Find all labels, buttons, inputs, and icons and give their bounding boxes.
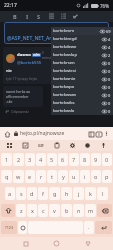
button[interactable]: 6 bbox=[58, 153, 68, 166]
button[interactable]: bortekwdupie bbox=[51, 51, 113, 59]
button[interactable]: 2 bbox=[13, 153, 24, 166]
staticText: m bbox=[88, 207, 94, 214]
button[interactable]: o bbox=[91, 170, 101, 183]
button[interactable]: k bbox=[85, 187, 96, 200]
staticText: bortektregduje bbox=[53, 36, 77, 42]
staticText: s bbox=[20, 190, 23, 197]
button[interactable]: bortekromonzu bbox=[51, 27, 113, 35]
staticText: 0 bbox=[105, 156, 109, 163]
staticText: 0 bbox=[108, 77, 111, 82]
button[interactable]: 4 bbox=[36, 153, 46, 166]
button[interactable]: r bbox=[36, 170, 46, 183]
staticText: t bbox=[51, 173, 53, 180]
button[interactable]: bortekrsenomonzu bbox=[51, 59, 113, 67]
button[interactable]: 7 bbox=[69, 153, 79, 166]
button[interactable]: Settings bbox=[67, 140, 78, 151]
button[interactable]: Home bbox=[3, 130, 11, 138]
staticText: . bbox=[88, 224, 90, 231]
button[interactable]: a bbox=[5, 187, 15, 200]
button[interactable]: More options bbox=[103, 130, 110, 137]
button[interactable]: Clipboard bbox=[51, 140, 62, 151]
button[interactable]: u bbox=[69, 170, 79, 183]
staticText: hejto.pl/najnowsze bbox=[20, 130, 65, 137]
button[interactable]: Quote bbox=[45, 11, 57, 22]
button[interactable]: List bbox=[57, 11, 69, 22]
staticText: bortekwsannie bbox=[53, 92, 77, 98]
staticText: tyle 17 tysięcy hejto bbox=[6, 76, 38, 81]
button[interactable]: Shift bbox=[1, 204, 15, 217]
button[interactable]: Strikethrough bbox=[33, 11, 45, 22]
staticText: nie bbox=[6, 68, 12, 73]
staticText: bortekwiksomoscie bbox=[53, 100, 77, 106]
button[interactable]: t bbox=[47, 170, 57, 183]
button[interactable]: x bbox=[27, 204, 37, 217]
button[interactable]: Home bbox=[51, 238, 62, 249]
button[interactable]: @ASP_NET_NET_Amazing bbox=[4, 22, 109, 44]
button[interactable]: n bbox=[73, 204, 84, 217]
button[interactable]: Recents bbox=[20, 238, 31, 249]
button[interactable]: 9 bbox=[91, 153, 101, 166]
staticText: 0 bbox=[108, 69, 111, 74]
button[interactable]: 5 bbox=[47, 153, 57, 166]
button[interactable]: 0 bbox=[102, 153, 112, 166]
button[interactable]: bortekwniesienku bbox=[51, 75, 113, 83]
button[interactable]: dasmo bbox=[3, 47, 55, 84]
button[interactable]: Stickers bbox=[20, 140, 31, 151]
button[interactable]: 1 bbox=[1, 153, 12, 166]
button[interactable]: Theme bbox=[82, 140, 93, 151]
button[interactable]: i bbox=[80, 170, 90, 183]
button[interactable]: Link bbox=[69, 11, 81, 22]
button[interactable]: Voice input bbox=[98, 140, 109, 151]
button[interactable]: Bold bbox=[9, 11, 21, 22]
button[interactable]: Backspace bbox=[97, 204, 112, 217]
staticText: b bbox=[65, 207, 69, 214]
button[interactable]: w bbox=[13, 170, 24, 183]
button[interactable]: bortekwsannie bbox=[51, 91, 113, 99]
button[interactable]: sweet herbs aa officemember -sile bbox=[3, 86, 43, 107]
button[interactable]: s bbox=[16, 187, 26, 200]
button[interactable]: l bbox=[97, 187, 108, 200]
button[interactable]: Tabs bbox=[95, 130, 103, 138]
button[interactable]: bortekwiksomoscie bbox=[51, 99, 113, 107]
staticText: bortekdeweloperski bbox=[53, 44, 77, 50]
button[interactable]: b bbox=[61, 204, 72, 217]
staticText: e bbox=[28, 173, 32, 180]
button[interactable]: bortekwdomu bbox=[51, 107, 113, 115]
button[interactable]: q bbox=[1, 170, 12, 183]
staticText: bortekwdomu bbox=[53, 108, 77, 114]
button[interactable]: Italic bbox=[21, 11, 33, 22]
button[interactable]: c bbox=[38, 204, 48, 217]
button[interactable]: d bbox=[27, 187, 37, 200]
button[interactable]: ?123 bbox=[1, 221, 17, 234]
button[interactable]: bortektregduje bbox=[51, 35, 113, 43]
button[interactable]: Back bbox=[82, 238, 93, 249]
button[interactable]: f bbox=[38, 187, 48, 200]
button[interactable]: y bbox=[58, 170, 68, 183]
button[interactable]: v bbox=[49, 204, 60, 217]
button[interactable]: GIF bbox=[35, 140, 46, 151]
button[interactable]: m bbox=[85, 204, 96, 217]
button[interactable]: j bbox=[73, 187, 84, 200]
staticText: bortekwniesienku bbox=[53, 76, 77, 82]
button[interactable]: e bbox=[25, 170, 35, 183]
staticText: B bbox=[13, 13, 17, 20]
button[interactable]: . bbox=[84, 221, 94, 234]
button[interactable]: g bbox=[49, 187, 60, 200]
button[interactable]: z bbox=[16, 204, 26, 217]
button[interactable]: Keyboard switcher bbox=[4, 140, 15, 151]
button[interactable]: p bbox=[102, 170, 112, 183]
button[interactable]: hejto.pl/najnowsze bbox=[20, 130, 87, 137]
button[interactable]: 3 bbox=[25, 153, 35, 166]
button[interactable]: Reply bbox=[3, 109, 29, 114]
other: Secure bbox=[14, 131, 18, 136]
button[interactable]: bortekwpowietrzu bbox=[51, 83, 113, 91]
button[interactable]: Emoji bbox=[18, 221, 27, 234]
button[interactable]: bortekwiesienku bbox=[51, 67, 113, 75]
button[interactable]: 8 bbox=[80, 153, 90, 166]
button[interactable]: Enter bbox=[95, 221, 112, 234]
button[interactable]: Reader mode bbox=[87, 130, 95, 138]
button[interactable]: bortekdeweloperski bbox=[51, 43, 113, 51]
staticText: q bbox=[5, 173, 9, 180]
button[interactable]: h bbox=[61, 187, 72, 200]
